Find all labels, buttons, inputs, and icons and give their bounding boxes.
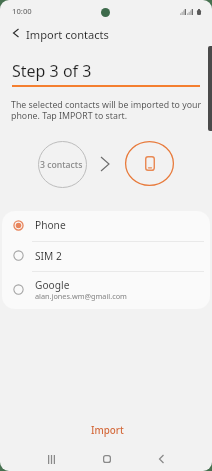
staticText: 10:00 [12, 6, 32, 16]
staticText: Phone [35, 218, 66, 232]
button[interactable]: Phone [2, 211, 210, 241]
staticText: Step 3 of 3 [12, 60, 92, 82]
button[interactable]: Google [2, 272, 210, 309]
button[interactable]: SIM 2 [2, 242, 210, 271]
button[interactable]: Import [75, 419, 140, 442]
button[interactable]: Back [145, 443, 177, 471]
staticText: The selected contacts will be imported t… [11, 99, 203, 122]
staticText: Import contacts [26, 27, 109, 42]
staticText: alan.jones.wm@gmail.com [35, 291, 127, 301]
button[interactable]: Back [6, 20, 26, 46]
staticText: SIM 2 [35, 249, 62, 263]
staticText: Google [35, 278, 70, 292]
button[interactable]: Home [91, 443, 123, 471]
staticText: Import [91, 424, 124, 437]
staticText: 3 contacts [40, 159, 83, 171]
button[interactable]: Recents [35, 443, 67, 471]
